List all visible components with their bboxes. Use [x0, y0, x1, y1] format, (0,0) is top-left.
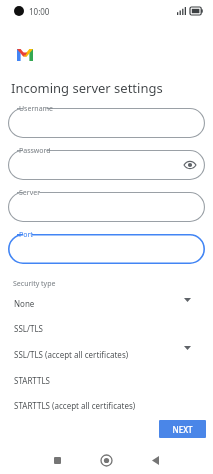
button[interactable]: Expand [180, 294, 194, 306]
button[interactable]: Username [8, 108, 205, 138]
button[interactable]: Home [98, 452, 114, 468]
button[interactable]: STARTTLS [5, 367, 178, 393]
button[interactable]: Recent apps [49, 452, 65, 468]
button[interactable]: SSL/TLS (accept all certificates) [5, 341, 178, 367]
staticText: Username [19, 104, 54, 114]
button[interactable]: Show password [183, 158, 197, 172]
staticText: Server [19, 188, 41, 198]
staticText: SSL/TLS (accept all certificates) [14, 349, 129, 360]
button[interactable]: Server [8, 192, 205, 222]
button[interactable]: Port [8, 234, 205, 264]
staticText: Incoming server settings [11, 79, 163, 97]
staticText: NEXT [172, 424, 193, 435]
button[interactable]: STARTTLS (accept all certificates) [5, 393, 178, 418]
staticText: Security type [13, 279, 56, 289]
staticText: SSL/TLS [14, 323, 43, 334]
button[interactable]: None [5, 291, 178, 315]
staticText: STARTTLS [14, 375, 51, 386]
staticText: 10:00 [29, 6, 50, 17]
button[interactable]: Password [8, 150, 205, 180]
staticText: Password [19, 146, 51, 156]
staticText: STARTTLS (accept all certificates) [14, 400, 136, 411]
staticText: None [14, 298, 35, 309]
button[interactable]: Back [147, 452, 163, 468]
staticText: Port [19, 230, 33, 240]
button[interactable]: NEXT [159, 420, 206, 438]
button[interactable]: SSL/TLS [5, 315, 178, 341]
button[interactable]: Expand [180, 342, 194, 354]
